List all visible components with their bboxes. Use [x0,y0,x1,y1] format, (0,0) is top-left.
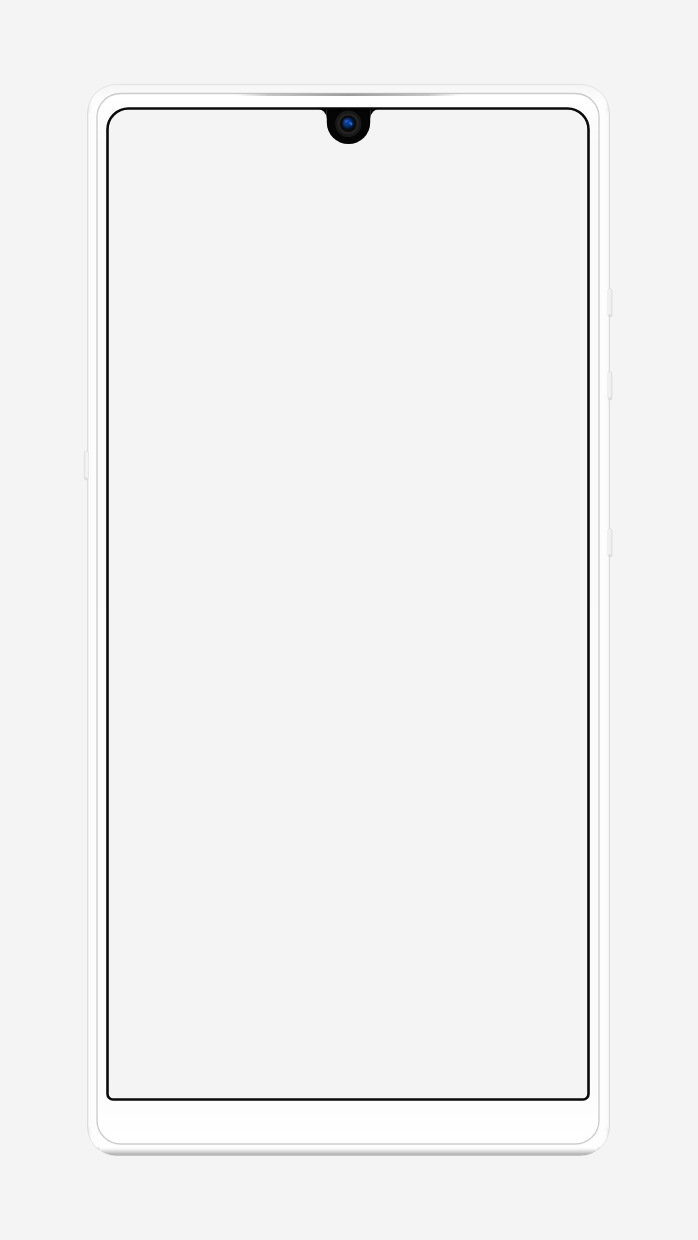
button[interactable]: Phone screen [108,109,589,1100]
button[interactable]: Volume up [607,286,614,320]
button[interactable]: Front camera [326,106,371,146]
button[interactable]: Earpiece [240,88,456,100]
button[interactable]: Power [607,526,614,560]
button[interactable]: Volume down [607,369,614,403]
button[interactable]: Assistant key [84,450,91,484]
